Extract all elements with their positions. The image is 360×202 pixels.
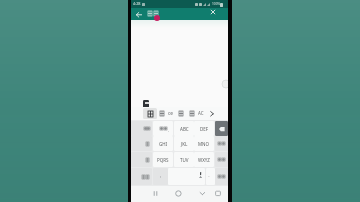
button[interactable] — [168, 168, 205, 185]
button[interactable]: ABC — [174, 121, 194, 136]
button[interactable]: JKL — [174, 136, 194, 151]
button[interactable]: WXYZ — [194, 152, 214, 167]
button[interactable] — [215, 168, 228, 185]
button[interactable] — [131, 152, 152, 167]
button[interactable]: DEF — [194, 121, 214, 136]
staticText: ， — [158, 173, 163, 179]
button[interactable] — [131, 136, 152, 151]
button[interactable] — [133, 10, 143, 20]
button[interactable]: GHI — [153, 136, 173, 151]
button[interactable] — [131, 168, 152, 185]
button[interactable] — [150, 188, 161, 199]
button[interactable] — [214, 188, 223, 199]
button[interactable] — [215, 152, 228, 167]
staticText: 100% — [212, 2, 221, 6]
button[interactable]: , — [153, 121, 173, 136]
staticText: TUV — [180, 157, 189, 163]
staticText: MNO — [198, 141, 210, 147]
button[interactable] — [197, 188, 208, 199]
button[interactable] — [215, 121, 228, 136]
staticText: PQRS — [157, 157, 169, 163]
button[interactable]: TUV — [174, 152, 194, 167]
staticText: 。 — [208, 173, 213, 179]
button[interactable]: MNO — [194, 136, 214, 151]
staticText: DEF — [200, 126, 209, 132]
staticText: WXYZ — [198, 157, 210, 163]
staticText: GHI — [159, 141, 168, 147]
button[interactable] — [143, 108, 157, 119]
button[interactable] — [210, 111, 214, 117]
staticText: ABC — [180, 126, 189, 132]
button[interactable] — [131, 121, 152, 136]
staticText: , — [168, 128, 169, 132]
staticText: AC — [198, 110, 204, 116]
staticText: 4:28 — [133, 1, 141, 6]
staticText: ce — [168, 110, 174, 117]
button[interactable] — [215, 136, 228, 151]
button[interactable]: PQRS — [153, 152, 173, 167]
staticText: JKL — [181, 141, 188, 147]
button[interactable] — [208, 7, 218, 17]
button[interactable] — [173, 188, 184, 199]
